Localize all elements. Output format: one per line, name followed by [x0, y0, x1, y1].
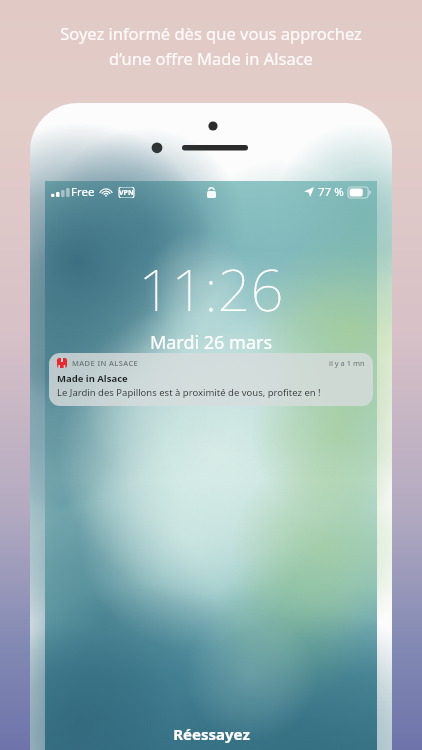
staticText: 11:26: [45, 249, 377, 328]
staticText: 77 %: [318, 184, 344, 200]
button[interactable]: MADE IN ALSACE: [49, 353, 373, 406]
staticText: Free: [71, 184, 95, 200]
staticText: VPN: [119, 188, 134, 198]
button[interactable]: Réessayez: [45, 712, 377, 750]
other: Locked: [207, 186, 216, 198]
staticText: Le Jardin des Papillons est à proximité …: [57, 386, 321, 399]
staticText: MADE IN ALSACE: [72, 358, 139, 368]
staticText: Soyez informé dès que vous approchez: [14, 22, 408, 44]
staticText: Made in Alsace: [57, 372, 128, 385]
staticText: il y a 1 mn: [329, 358, 365, 368]
staticText: d’une offre Made in Alsace: [14, 47, 408, 69]
staticText: Réessayez: [173, 724, 250, 744]
staticText: Mardi 26 mars: [45, 330, 377, 355]
